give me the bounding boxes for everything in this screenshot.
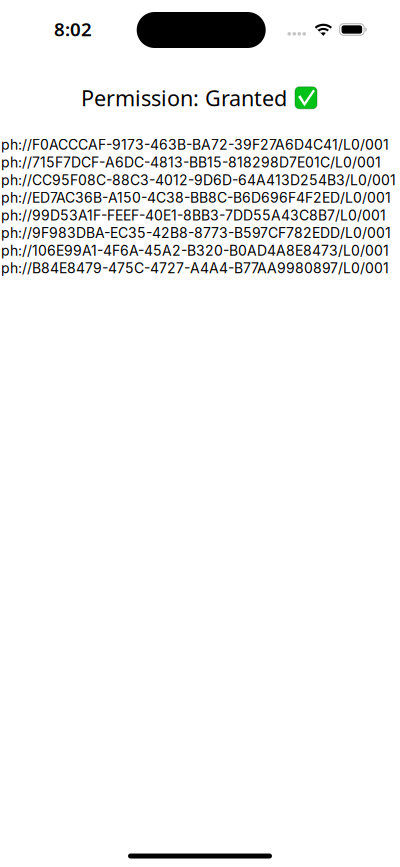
staticText: ph://106E99A1-4F6A-45A2-B320-B0AD4A8E847… xyxy=(1,242,389,259)
staticText: Permission: Granted xyxy=(81,83,287,112)
staticText: ph://CC95F08C-88C3-4012-9D6D-64A413D254B… xyxy=(1,172,396,188)
staticText: ph://B84E8479-475C-4727-A4A4-B77AA998089… xyxy=(1,260,389,277)
staticText: ph://F0ACCCAF-9173-463B-BA72-39F27A6D4C4… xyxy=(1,136,389,153)
staticText: ph://715F7DCF-A6DC-4813-BB15-818298D7E01… xyxy=(1,154,381,171)
staticText: 8:02 xyxy=(54,16,92,42)
staticText: ph://9F983DBA-EC35-42B8-8773-B597CF782ED… xyxy=(1,224,391,241)
staticText: ph://ED7AC36B-A150-4C38-BB8C-B6D696F4F2E… xyxy=(1,189,391,206)
staticText: ph://99D53A1F-FEEF-40E1-8BB3-7DD55A43C8B… xyxy=(1,207,386,224)
